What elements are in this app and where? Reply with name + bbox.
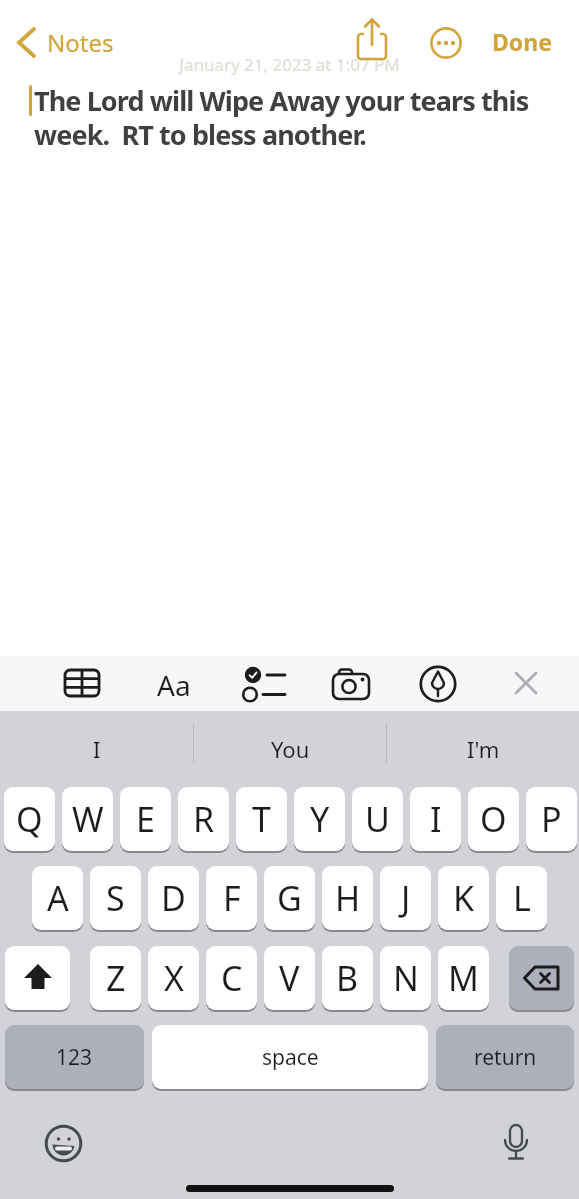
staticText: C — [221, 955, 243, 1001]
button[interactable]: R — [178, 787, 229, 851]
button[interactable] — [418, 664, 458, 704]
staticText: I — [93, 734, 101, 764]
button[interactable] — [5, 946, 70, 1010]
staticText: F — [223, 875, 241, 921]
staticText: E — [136, 796, 155, 842]
button[interactable]: F — [206, 866, 257, 930]
button[interactable]: W — [62, 787, 113, 851]
button[interactable] — [509, 946, 574, 1010]
staticText: U — [365, 796, 390, 842]
button[interactable]: B — [322, 946, 373, 1010]
button[interactable]: H — [322, 866, 373, 930]
button[interactable]: return — [436, 1025, 574, 1089]
button[interactable] — [62, 666, 102, 700]
staticText: I'm — [467, 734, 500, 764]
button[interactable] — [430, 27, 462, 59]
button[interactable]: L — [496, 866, 547, 930]
staticText: X — [164, 955, 184, 1001]
staticText: P — [541, 796, 562, 842]
staticText: R — [193, 796, 215, 842]
staticText: Q — [16, 796, 43, 842]
staticText: B — [336, 955, 359, 1001]
staticText: L — [513, 875, 531, 921]
button[interactable] — [498, 1122, 534, 1168]
staticText: N — [393, 955, 419, 1001]
button[interactable]: 123 — [5, 1025, 144, 1089]
staticText: G — [277, 875, 302, 921]
button[interactable] — [330, 668, 372, 700]
staticText: Z — [106, 955, 126, 1001]
button[interactable]: X — [148, 946, 199, 1010]
staticText: Aa — [157, 666, 191, 700]
staticText: K — [453, 875, 475, 921]
button[interactable]: V — [264, 946, 315, 1010]
button[interactable]: I — [410, 787, 461, 851]
staticText: You — [271, 734, 310, 764]
staticText: A — [47, 875, 69, 921]
button[interactable]: Y — [294, 787, 345, 851]
staticText: S — [106, 875, 125, 921]
staticText: I — [430, 796, 442, 842]
staticText: The Lord will Wipe Away your tears this … — [34, 82, 529, 153]
button[interactable]: I — [0, 711, 193, 787]
staticText: V — [279, 955, 300, 1001]
button[interactable]: N — [380, 946, 431, 1010]
button[interactable]: J — [380, 866, 431, 930]
staticText: Notes — [47, 26, 114, 59]
button[interactable]: A — [32, 866, 83, 930]
staticText: return — [474, 1043, 537, 1072]
button[interactable]: Q — [4, 787, 55, 851]
staticText: Y — [310, 796, 330, 842]
staticText: M — [448, 955, 479, 1001]
button[interactable]: Done — [492, 26, 560, 60]
button[interactable]: U — [352, 787, 403, 851]
button[interactable]: T — [236, 787, 287, 851]
button[interactable]: I'm — [387, 711, 579, 787]
staticText: January 21, 2023 at 1:07 PM — [0, 53, 579, 76]
button[interactable]: O — [468, 787, 519, 851]
button[interactable]: Aa — [150, 666, 198, 700]
staticText: space — [262, 1043, 319, 1072]
button[interactable] — [352, 16, 392, 64]
button[interactable]: Notes — [12, 22, 114, 62]
staticText: D — [161, 875, 186, 921]
staticText: T — [252, 796, 271, 842]
staticText: 123 — [56, 1043, 93, 1072]
button[interactable]: M — [438, 946, 489, 1010]
button[interactable]: Z — [90, 946, 141, 1010]
button[interactable]: space — [152, 1025, 428, 1089]
button[interactable] — [44, 1124, 84, 1164]
button[interactable] — [508, 666, 544, 700]
button[interactable]: C — [206, 946, 257, 1010]
button[interactable]: G — [264, 866, 315, 930]
button[interactable]: You — [194, 711, 386, 787]
staticText: W — [72, 796, 104, 842]
button[interactable]: S — [90, 866, 141, 930]
button[interactable]: K — [438, 866, 489, 930]
staticText: O — [480, 796, 507, 842]
staticText: H — [335, 875, 361, 921]
staticText: J — [401, 875, 411, 921]
button[interactable] — [240, 666, 288, 700]
staticText: Done — [492, 26, 552, 57]
button[interactable]: P — [526, 787, 577, 851]
button[interactable]: E — [120, 787, 171, 851]
button[interactable]: D — [148, 866, 199, 930]
